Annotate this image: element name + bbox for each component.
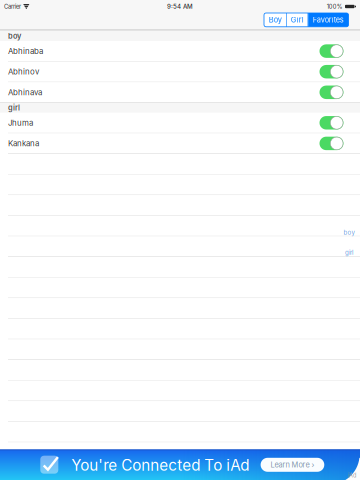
staticText: 9:54 AM xyxy=(167,3,193,10)
staticText: Learn More › xyxy=(270,460,314,469)
staticText: Favorites xyxy=(313,15,344,24)
button[interactable]: Abhinava xyxy=(0,82,360,102)
staticText: boy xyxy=(8,32,21,41)
staticText: Abhinov xyxy=(8,67,39,76)
staticText: Carrier xyxy=(4,3,21,10)
button[interactable]: Boy xyxy=(264,13,286,27)
staticText: iAd xyxy=(348,472,356,479)
staticText: 100% xyxy=(327,3,343,10)
staticText: You're Connected To iAd xyxy=(71,456,249,474)
staticText: girl xyxy=(8,103,20,112)
staticText: girl xyxy=(345,249,353,256)
button[interactable]: Kankana xyxy=(0,133,360,153)
button[interactable]: Favorites xyxy=(308,13,348,27)
button[interactable]: girl xyxy=(342,249,356,256)
button[interactable]: Girl xyxy=(287,13,308,27)
button[interactable]: Abhinov xyxy=(0,62,360,82)
staticText: Abhinava xyxy=(8,87,42,97)
staticText: Jhuma xyxy=(8,118,33,127)
staticText: Kankana xyxy=(8,139,39,148)
button[interactable]: Abhinaba xyxy=(0,41,360,61)
button[interactable]: boy xyxy=(342,229,356,236)
staticText: Girl xyxy=(291,15,304,24)
staticText: Boy xyxy=(269,15,282,24)
staticText: Abhinaba xyxy=(8,46,43,56)
staticText: boy xyxy=(343,229,354,236)
button[interactable]: Jhuma xyxy=(0,113,360,133)
button[interactable]: You're Connected To iAd xyxy=(0,449,360,480)
